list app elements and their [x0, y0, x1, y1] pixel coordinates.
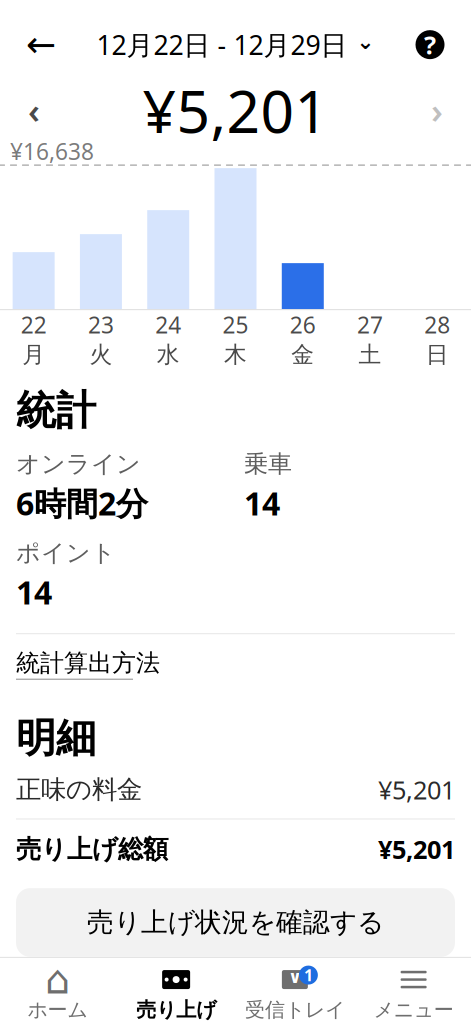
- button[interactable]: 前の週: [12, 86, 56, 134]
- button[interactable]: 統計算出方法: [16, 634, 160, 694]
- staticText: ›: [431, 87, 443, 133]
- staticText: 日: [426, 341, 449, 369]
- staticText: 統計: [16, 386, 96, 435]
- staticText: ∨: [288, 967, 302, 987]
- staticText: 火: [89, 341, 112, 369]
- staticText: ←: [26, 24, 56, 65]
- staticText: 28: [424, 310, 450, 340]
- staticText: 金: [291, 341, 314, 369]
- staticText: 26: [290, 310, 316, 340]
- staticText: ⌄: [356, 29, 374, 54]
- staticText: メニュー: [374, 998, 454, 1022]
- button[interactable]: 12月22日 - 12月29日: [88, 21, 382, 68]
- staticText: 明細: [16, 714, 96, 763]
- staticText: 受信トレイ: [245, 998, 345, 1022]
- staticText: ¥5,201: [378, 773, 455, 806]
- staticText: 23: [88, 310, 114, 340]
- staticText: 正味の料金: [16, 774, 142, 805]
- button[interactable]: ∨: [235, 964, 354, 1024]
- staticText: 土: [359, 341, 382, 369]
- staticText: ¥5,201: [378, 832, 455, 866]
- staticText: オンライン: [16, 449, 141, 479]
- staticText: 12月22日 - 12月29日: [96, 27, 347, 62]
- staticText: 売り上げ: [136, 998, 216, 1022]
- staticText: 22: [21, 310, 47, 340]
- button[interactable]: 次の週: [415, 86, 459, 134]
- staticText: 14: [16, 571, 52, 613]
- button[interactable]: メニュー: [354, 964, 471, 1024]
- staticText: 統計算出方法: [16, 648, 160, 678]
- staticText: ⌂: [45, 957, 70, 1002]
- staticText: 14: [244, 482, 280, 524]
- staticText: ホーム: [27, 998, 87, 1022]
- staticText: 木: [224, 341, 247, 369]
- staticText: 月: [22, 341, 45, 369]
- staticText: 乗車: [244, 449, 292, 479]
- staticText: 24: [155, 310, 181, 340]
- button[interactable]: 売り上げ状況を確認する: [16, 888, 455, 957]
- staticText: ‹: [28, 87, 40, 133]
- button[interactable]: 売り上げ: [117, 964, 236, 1024]
- staticText: ¥16,638: [10, 136, 94, 166]
- staticText: 27: [357, 310, 383, 340]
- staticText: 水: [157, 341, 180, 369]
- staticText: 売り上げ状況を確認する: [87, 906, 384, 939]
- staticText: ポイント: [16, 538, 116, 568]
- staticText: 6時間2分: [16, 482, 148, 524]
- staticText: ¥5,201: [142, 71, 328, 149]
- button[interactable]: ⌂: [0, 964, 117, 1024]
- button[interactable]: 戻る: [18, 22, 64, 68]
- staticText: 売り上げ総額: [16, 834, 168, 865]
- staticText: 1: [304, 964, 313, 986]
- button[interactable]: ヘルプ: [407, 22, 453, 68]
- staticText: ?: [424, 28, 436, 61]
- staticText: 25: [222, 310, 248, 340]
